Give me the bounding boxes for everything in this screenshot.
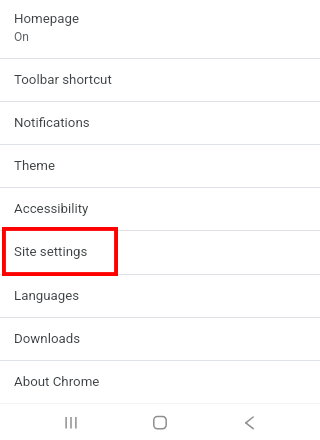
button[interactable]: Toolbar shortcut (0, 59, 320, 101)
staticText: Languages (14, 288, 80, 304)
button[interactable]: Languages (0, 275, 320, 317)
staticText: Theme (14, 158, 56, 174)
staticText: Toolbar shortcut (14, 72, 112, 88)
staticText: Accessibility (14, 201, 89, 217)
button[interactable]: Site settings (0, 231, 320, 273)
button[interactable]: Downloads (0, 318, 320, 360)
button[interactable]: Theme (0, 145, 320, 187)
staticText: Notifications (14, 115, 90, 131)
staticText: Homepage (14, 11, 79, 27)
button[interactable]: Back (225, 404, 273, 435)
button[interactable]: Accessibility (0, 188, 320, 230)
button[interactable]: Home (136, 404, 184, 435)
staticText: About Chrome (14, 374, 100, 390)
button[interactable]: Notifications (0, 102, 320, 144)
staticText: Site settings (14, 244, 88, 260)
button[interactable]: About Chrome (0, 361, 320, 403)
staticText: Downloads (14, 331, 81, 347)
staticText: On (14, 30, 29, 44)
button[interactable]: Recent apps (47, 404, 95, 435)
button[interactable]: Homepage (0, 0, 320, 57)
